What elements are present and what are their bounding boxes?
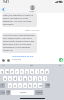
staticText: space [20,91,26,94]
button[interactable]: return [35,90,43,95]
button[interactable]: l [43,76,47,81]
button[interactable]: f [18,76,22,81]
button[interactable]: t [20,69,24,74]
button[interactable]: q [0,69,4,74]
staticText: p [46,70,48,74]
staticText: q [1,70,3,74]
staticText: f [20,77,21,81]
button[interactable]: v [23,83,27,88]
button[interactable]: space [11,90,34,95]
button[interactable]: Back [0,6,6,12]
staticText: b [29,84,31,88]
staticText: "I" [2,64,5,67]
button[interactable]: c [18,83,22,88]
button[interactable]: I found a nice cafe downtown that opens … [2,33,37,53]
staticText: ⌫ [46,84,50,87]
button[interactable]: ⇧ [0,83,5,88]
button[interactable]: h [28,76,32,81]
staticText: iMessage [12,58,22,61]
button[interactable]: i [35,69,39,74]
staticText: I'll [59,64,62,67]
button[interactable]: m [38,83,42,88]
button[interactable]: iMessage [11,57,58,62]
button[interactable]: u [30,69,34,74]
button[interactable]: j [33,76,37,81]
staticText: d [14,77,16,81]
staticText: u [31,70,33,74]
button[interactable]: e [10,69,14,74]
staticText: ☺ [7,91,10,94]
staticText: g [24,77,26,81]
staticText: o [41,70,43,74]
button[interactable]: Anna › [29,5,36,13]
button[interactable]: w [5,69,9,74]
staticText: e [11,70,13,74]
staticText: w [6,70,9,74]
staticText: l [45,77,46,81]
staticText: r [16,70,18,74]
button[interactable]: k [38,76,42,81]
button[interactable]: 123 [0,90,5,95]
button[interactable]: o [40,69,44,74]
staticText: x [14,84,16,88]
button[interactable]: g [23,76,27,81]
button[interactable]: x [13,83,17,88]
button[interactable]: Apps [6,58,10,62]
button[interactable]: z [8,83,12,88]
staticText: Hey! Just wanted to check in about the p… [3,14,36,26]
button[interactable]: y [25,69,29,74]
staticText: j [35,77,36,81]
staticText: i [37,70,38,74]
staticText: return [36,91,42,94]
staticText: Today 10:24 AM [25,29,39,32]
staticText: z [9,84,11,88]
button[interactable]: p [45,69,49,74]
button[interactable]: d [13,76,17,81]
staticText: c [19,84,21,88]
button[interactable]: Hey! Just wanted to check in about the p… [2,13,37,27]
staticText: k [39,77,41,81]
staticText: 9:41 [3,0,9,4]
button[interactable]: b [28,83,32,88]
staticText: t [21,70,23,74]
staticText: s [9,77,11,81]
button[interactable]: ☺ [6,90,10,95]
staticText: 123 [1,91,5,94]
staticText: n [34,84,36,88]
button[interactable]: Send [59,58,63,62]
staticText: ⇧ [1,84,4,87]
staticText: Anna › [29,10,36,13]
button[interactable]: r [15,69,19,74]
staticText: y [26,70,28,74]
staticText: I'm [30,64,34,67]
staticText: a [4,77,6,81]
staticText: Sounds great to me [12,55,34,57]
staticText: h [29,77,31,81]
staticText: v [24,84,26,88]
button[interactable]: a [3,76,7,81]
staticText: I found a nice cafe downtown that opens … [3,34,36,52]
button[interactable]: ⌫ [45,83,50,88]
button[interactable]: Camera [1,58,5,62]
button[interactable]: n [33,83,37,88]
staticText: m [39,84,42,88]
button[interactable]: s [8,76,12,81]
